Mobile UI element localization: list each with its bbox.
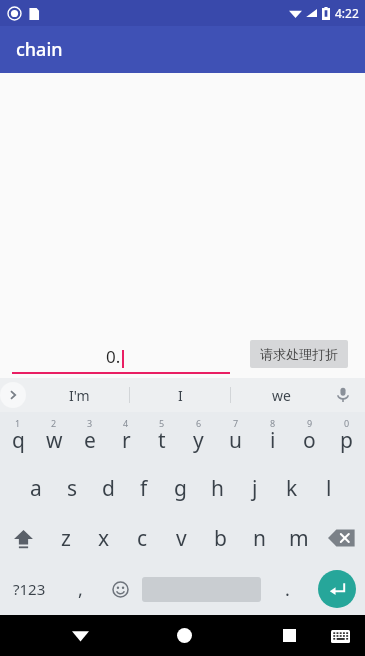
- button[interactable]: I'm: [30, 378, 129, 412]
- staticText: .: [285, 577, 290, 602]
- staticText: 3: [87, 417, 93, 429]
- button[interactable]: g: [162, 463, 199, 513]
- staticText: c: [137, 524, 148, 553]
- staticText: a: [30, 474, 42, 503]
- staticText: 请求处理打折: [260, 346, 338, 362]
- staticText: o: [303, 426, 316, 455]
- button[interactable]: ,: [58, 563, 102, 615]
- button[interactable]: 2: [36, 412, 72, 463]
- staticText: p: [340, 426, 353, 455]
- staticText: r: [122, 426, 131, 455]
- button[interactable]: a: [18, 463, 54, 513]
- button[interactable]: 5: [144, 412, 180, 463]
- button[interactable]: c: [123, 513, 162, 563]
- button[interactable]: 8: [254, 412, 291, 463]
- staticText: d: [102, 474, 115, 503]
- button[interactable]: 3: [72, 412, 108, 463]
- button[interactable]: 7: [217, 412, 254, 463]
- button[interactable]: Backspace: [318, 513, 365, 563]
- button[interactable]: 1: [0, 412, 36, 463]
- button[interactable]: Switch keyboard: [323, 619, 357, 653]
- staticText: s: [67, 474, 78, 503]
- button[interactable]: 4: [108, 412, 144, 463]
- button[interactable]: Emoji: [102, 563, 138, 615]
- button[interactable]: ?123: [0, 563, 58, 615]
- staticText: ?123: [13, 579, 46, 599]
- button[interactable]: we: [231, 378, 331, 412]
- staticText: 9: [307, 417, 313, 429]
- staticText: chain: [16, 37, 63, 62]
- button[interactable]: k: [273, 463, 310, 513]
- staticText: 8: [270, 417, 276, 429]
- staticText: ,: [78, 577, 83, 602]
- button[interactable]: Voice input: [331, 383, 355, 407]
- button[interactable]: z: [47, 513, 85, 563]
- button[interactable]: v: [162, 513, 201, 563]
- staticText: I'm: [69, 386, 90, 405]
- staticText: l: [326, 474, 332, 503]
- button[interactable]: d: [90, 463, 126, 513]
- staticText: n: [253, 524, 266, 553]
- staticText: 0: [344, 417, 350, 429]
- staticText: x: [98, 524, 110, 553]
- button[interactable]: 6: [180, 412, 217, 463]
- button[interactable]: m: [279, 513, 318, 563]
- staticText: h: [211, 474, 224, 503]
- button[interactable]: Enter: [318, 570, 356, 608]
- staticText: y: [193, 426, 204, 455]
- staticText: 2: [51, 417, 57, 429]
- staticText: f: [140, 474, 148, 503]
- staticText: q: [12, 426, 25, 455]
- staticText: u: [229, 426, 242, 455]
- staticText: i: [270, 426, 276, 455]
- staticText: 0.: [106, 345, 121, 368]
- button[interactable]: l: [310, 463, 347, 513]
- staticText: 4: [123, 417, 129, 429]
- button[interactable]: f: [126, 463, 162, 513]
- button[interactable]: .: [265, 563, 309, 615]
- staticText: 4:22: [335, 5, 359, 21]
- button[interactable]: n: [240, 513, 279, 563]
- button[interactable]: Hide keyboard: [58, 615, 102, 656]
- staticText: z: [61, 524, 71, 553]
- button[interactable]: Home: [162, 615, 206, 656]
- button[interactable]: Recents: [267, 615, 311, 656]
- button[interactable]: j: [236, 463, 273, 513]
- button[interactable]: 请求处理打折: [250, 340, 348, 368]
- button[interactable]: h: [199, 463, 236, 513]
- staticText: 6: [196, 417, 202, 429]
- button[interactable]: More suggestions: [0, 382, 26, 408]
- staticText: 7: [233, 417, 239, 429]
- staticText: 1: [15, 417, 21, 429]
- button[interactable]: 0.: [12, 334, 230, 374]
- button[interactable]: 9: [291, 412, 328, 463]
- staticText: I: [178, 386, 183, 405]
- staticText: k: [286, 474, 298, 503]
- button[interactable]: x: [85, 513, 123, 563]
- staticText: w: [46, 426, 63, 455]
- staticText: we: [272, 386, 291, 405]
- staticText: m: [289, 524, 309, 553]
- staticText: t: [158, 426, 166, 455]
- staticText: g: [174, 474, 187, 503]
- staticText: j: [252, 474, 258, 503]
- staticText: 5: [159, 417, 165, 429]
- button[interactable]: I: [130, 378, 230, 412]
- button[interactable]: Shift: [0, 513, 47, 563]
- button[interactable]: s: [54, 463, 90, 513]
- button[interactable]: b: [201, 513, 240, 563]
- staticText: b: [214, 524, 227, 553]
- staticText: e: [84, 426, 96, 455]
- staticText: v: [176, 524, 187, 553]
- button[interactable]: 0: [328, 412, 365, 463]
